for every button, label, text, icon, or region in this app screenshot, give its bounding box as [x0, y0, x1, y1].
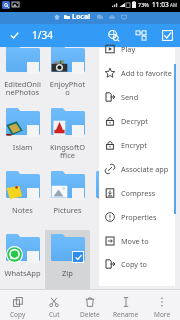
- staticText: EnjoyPhoto: [48, 79, 87, 98]
- button[interactable]: Decrypt: [99, 109, 175, 133]
- button[interactable]: Back: [3, 24, 25, 46]
- button[interactable]: Network: [131, 25, 151, 45]
- staticText: Encrypt: [121, 140, 147, 150]
- button[interactable]: [90, 230, 135, 293]
- button[interactable]: More: [144, 290, 180, 320]
- staticText: Send: [121, 92, 139, 102]
- staticText: Delete: [80, 310, 100, 319]
- staticText: AM: [170, 2, 177, 8]
- button[interactable]: Send: [99, 85, 175, 109]
- button[interactable]: [135, 167, 180, 230]
- staticText: Copy: [10, 310, 26, 319]
- button[interactable]: Cut: [36, 290, 72, 320]
- staticText: EditedOnlinePhotos: [3, 79, 42, 98]
- button[interactable]: Search the web: [103, 25, 123, 45]
- button[interactable]: [135, 104, 180, 167]
- button[interactable]: Zip: [45, 230, 90, 293]
- button[interactable]: Messages: [96, 13, 104, 21]
- staticText: Associate app: [121, 164, 169, 174]
- button[interactable]: Select all: [157, 25, 177, 45]
- button[interactable]: KingsoftOffice: [45, 104, 90, 167]
- staticText: Rename: [113, 310, 139, 319]
- staticText: Properties: [121, 212, 157, 222]
- button[interactable]: Rename: [108, 290, 144, 320]
- button[interactable]: [90, 104, 135, 167]
- staticText: Add to favorite: [121, 68, 172, 78]
- staticText: Move to: [121, 236, 149, 246]
- staticText: Play: [121, 44, 136, 54]
- button[interactable]: [90, 41, 135, 104]
- staticText: 11:03: [152, 0, 169, 9]
- staticText: KingsoftOffice: [48, 142, 87, 161]
- button[interactable]: Copy to: [99, 253, 175, 275]
- button[interactable]: Network: [120, 13, 128, 21]
- button[interactable]: Play: [99, 37, 175, 61]
- button[interactable]: [135, 230, 180, 293]
- button[interactable]: Copy: [0, 290, 36, 320]
- staticText: 73%: [138, 1, 149, 8]
- button[interactable]: U: [90, 167, 135, 230]
- button[interactable]: WhatsApp: [0, 230, 45, 293]
- staticText: Notes: [3, 205, 42, 215]
- button[interactable]: Islam: [0, 104, 45, 167]
- staticText: Cut: [49, 310, 60, 319]
- button[interactable]: [135, 41, 180, 104]
- button[interactable]: Delete: [72, 290, 108, 320]
- button[interactable]: Properties: [99, 205, 175, 229]
- staticText: Local: [72, 12, 91, 22]
- button[interactable]: EnjoyPhoto: [45, 41, 90, 104]
- staticText: Islam: [3, 142, 42, 152]
- button[interactable]: Associate app: [99, 157, 175, 181]
- staticText: Pictures: [48, 205, 87, 215]
- button[interactable]: Compress: [99, 181, 175, 205]
- button[interactable]: Home: [53, 13, 61, 21]
- button[interactable]: Move to: [99, 229, 175, 253]
- staticText: Zip: [48, 268, 87, 278]
- button[interactable]: Encrypt: [99, 133, 175, 157]
- staticText: Decrypt: [121, 116, 148, 126]
- staticText: More: [154, 310, 171, 319]
- button[interactable]: Cloud: [108, 13, 116, 21]
- staticText: Compress: [121, 188, 156, 198]
- button[interactable]: Pictures: [45, 167, 90, 230]
- staticText: WhatsApp: [3, 268, 42, 278]
- staticText: 1/34: [32, 28, 53, 42]
- button[interactable]: Notes: [0, 167, 45, 230]
- button[interactable]: Local: [64, 12, 91, 22]
- staticText: U: [93, 205, 132, 215]
- button[interactable]: EditedOnlinePhotos: [0, 41, 45, 104]
- staticText: Copy to: [121, 259, 148, 269]
- button[interactable]: Add to favorite: [99, 61, 175, 85]
